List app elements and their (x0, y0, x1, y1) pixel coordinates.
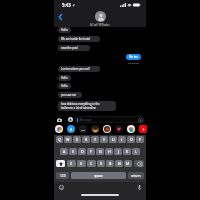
button[interactable]: A (60, 148, 68, 155)
staticText: B (109, 161, 112, 166)
button[interactable]: App (67, 125, 75, 133)
button[interactable]: Me too (126, 54, 141, 60)
button[interactable]: V (97, 160, 105, 167)
staticText: Q (58, 137, 61, 142)
staticText: C (90, 161, 93, 166)
staticText: Delivered (128, 61, 140, 64)
button[interactable]: D (78, 148, 86, 155)
staticText: We are inside the hotel (61, 37, 90, 41)
button[interactable]: App Store (67, 116, 74, 123)
staticText: K (126, 149, 129, 154)
button[interactable]: W (64, 136, 72, 143)
button[interactable]: B (106, 160, 114, 167)
staticText: G (99, 149, 102, 154)
button[interactable]: Q (56, 136, 63, 143)
button[interactable]: space (71, 172, 126, 179)
staticText: I (121, 137, 123, 142)
staticText: P (139, 137, 142, 142)
button[interactable]: O (127, 136, 135, 143)
staticText: H (108, 149, 111, 154)
staticText: return (131, 174, 141, 178)
button[interactable]: I (118, 136, 126, 143)
staticText: Me too (129, 55, 138, 59)
staticText: A (63, 149, 66, 154)
button[interactable]: F (87, 148, 95, 155)
staticText: X (80, 161, 83, 166)
button[interactable]: X (77, 160, 86, 167)
staticText: L (135, 149, 137, 154)
button[interactable]: I arrive where you are? (58, 66, 100, 72)
button[interactable]: Shift (56, 160, 65, 167)
staticText: Y (103, 137, 106, 142)
button[interactable]: E (73, 136, 81, 143)
button[interactable]: N (115, 160, 123, 167)
staticText: Hello (61, 28, 68, 32)
button[interactable]: L (132, 148, 140, 155)
button[interactable]: how delicious everything, in the bathroo… (58, 101, 116, 111)
staticText: F (90, 149, 92, 154)
button[interactable]: App (79, 125, 87, 133)
staticText: GIF (81, 128, 85, 131)
button[interactable]: K (123, 148, 131, 155)
staticText: space (94, 174, 103, 178)
staticText: near the pool (61, 46, 78, 50)
staticText: Z (70, 161, 73, 166)
staticText: how delicious everything, in the bathroo… (61, 102, 100, 110)
button[interactable]: Z (67, 160, 76, 167)
staticText: A Carl? W Buda › (90, 23, 110, 27)
button[interactable]: return (128, 172, 144, 179)
button[interactable]: App (139, 125, 147, 133)
button[interactable]: 123 (56, 172, 69, 179)
button[interactable]: near the pool (58, 45, 90, 51)
staticText: you saw me (61, 93, 76, 97)
button[interactable]: S (69, 148, 77, 155)
button[interactable]: A Carl? W Buda › (90, 11, 110, 27)
button[interactable]: M (124, 160, 132, 167)
button[interactable]: Dictate (136, 184, 142, 190)
staticText: I arrive where you are? (61, 67, 90, 71)
button[interactable]: App (115, 125, 123, 133)
staticText: M (126, 161, 130, 166)
staticText: iMessage (79, 118, 92, 122)
staticText: E (76, 137, 78, 142)
button[interactable]: App (127, 125, 135, 133)
button[interactable]: App (103, 125, 111, 133)
button[interactable]: Camera (56, 116, 63, 123)
button[interactable]: G (96, 148, 104, 155)
button[interactable]: Hello (58, 27, 71, 33)
staticText: O (130, 137, 133, 142)
button[interactable]: App (91, 125, 99, 133)
button[interactable]: Y (100, 136, 108, 143)
button[interactable]: Hello (58, 75, 71, 81)
button[interactable]: Hello (58, 83, 71, 89)
button[interactable]: iMessage (75, 116, 144, 123)
button[interactable]: T (91, 136, 99, 143)
staticText: 5:43 (62, 2, 71, 8)
button[interactable]: you saw me (58, 92, 82, 98)
button[interactable]: Back (55, 12, 65, 22)
staticText: J (118, 149, 119, 154)
button[interactable]: R (82, 136, 90, 143)
staticText: 123 (60, 174, 66, 178)
button[interactable]: C (87, 160, 96, 167)
button[interactable]: Backspace (134, 160, 144, 167)
staticText: Hello (61, 84, 68, 88)
button[interactable]: U (109, 136, 117, 143)
button[interactable]: H (105, 148, 113, 155)
button[interactable]: J (114, 148, 122, 155)
staticText: S (72, 149, 74, 154)
button[interactable]: App (55, 125, 63, 133)
staticText: T (94, 137, 96, 142)
staticText: U (112, 137, 115, 142)
button[interactable]: We are inside the hotel (58, 36, 100, 42)
staticText: W (66, 137, 70, 142)
button[interactable]: Send (137, 117, 143, 123)
staticText: V (100, 161, 103, 166)
staticText: R (85, 137, 88, 142)
button[interactable]: Emoji (58, 184, 64, 190)
staticText: N (118, 161, 121, 166)
staticText: D (81, 149, 84, 154)
button[interactable]: P (136, 136, 144, 143)
staticText: Hello (61, 76, 68, 80)
